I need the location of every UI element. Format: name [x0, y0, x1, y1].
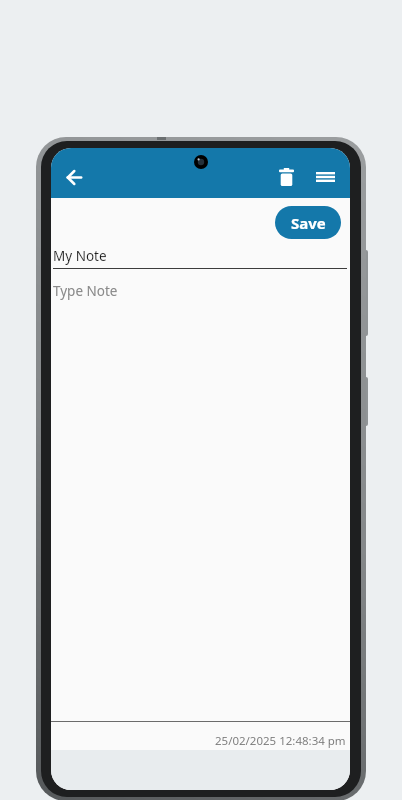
- staticText: Type Note: [53, 282, 118, 300]
- button[interactable]: [62, 165, 86, 189]
- button[interactable]: [274, 165, 298, 189]
- button[interactable]: [313, 165, 337, 189]
- staticText: Save: [291, 213, 326, 233]
- staticText: My Note: [53, 247, 107, 265]
- staticText: 25/02/2025 12:48:34 pm: [215, 733, 346, 749]
- button[interactable]: Save: [275, 206, 341, 239]
